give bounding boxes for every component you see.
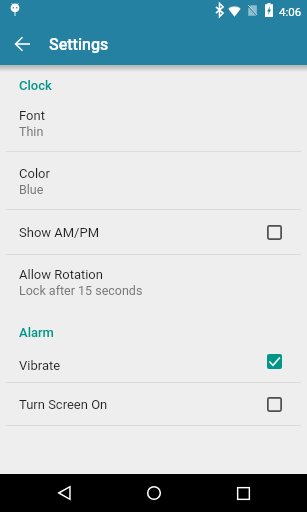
button[interactable]: Color — [0, 152, 307, 210]
button[interactable]: Recents — [220, 474, 266, 512]
staticText: Settings — [49, 35, 109, 54]
button[interactable]: Show AM/PM — [0, 210, 307, 255]
staticText: Vibrate — [19, 358, 61, 373]
button[interactable]: Back — [41, 474, 87, 512]
staticText: Blue — [19, 182, 44, 197]
staticText: Font — [19, 108, 45, 123]
staticText: Lock after 15 seconds — [19, 283, 143, 298]
button[interactable]: Back — [3, 25, 41, 63]
staticText: Clock — [19, 78, 52, 93]
staticText: Turn Screen On — [19, 397, 108, 412]
staticText: Show AM/PM — [19, 225, 100, 240]
button[interactable]: Turn Screen On — [0, 383, 307, 426]
button[interactable]: Allow Rotation — [0, 255, 307, 313]
staticText: Allow Rotation — [19, 267, 103, 282]
staticText: Alarm — [19, 325, 54, 340]
staticText: 4:06 — [279, 5, 302, 18]
staticText: Thin — [19, 124, 44, 139]
staticText: Color — [19, 166, 50, 181]
button[interactable]: Home — [131, 474, 177, 512]
button[interactable]: Font — [0, 94, 307, 152]
button[interactable]: Vibrate — [0, 341, 307, 383]
